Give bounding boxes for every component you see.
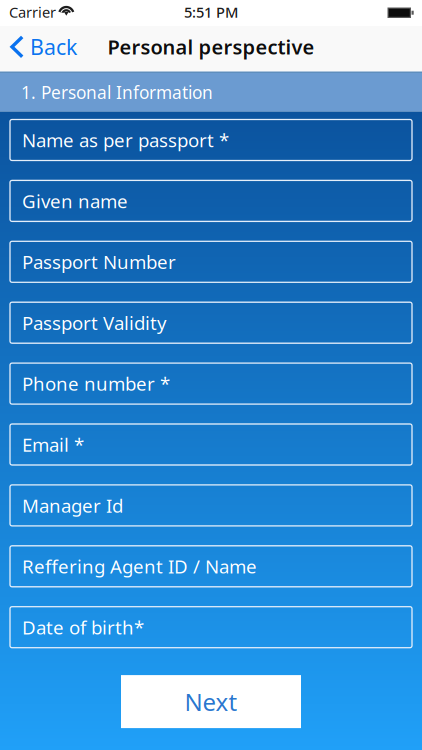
button[interactable]: Phone number * xyxy=(10,363,412,404)
staticText: Email * xyxy=(22,432,84,457)
staticText: Passport Validity xyxy=(22,310,167,335)
staticText: Carrier xyxy=(9,2,56,22)
button[interactable]: Date of birth* xyxy=(10,607,412,648)
staticText: 5:51 PM xyxy=(184,2,238,22)
staticText: Date of birth* xyxy=(22,615,144,640)
staticText: Passport Number xyxy=(22,249,176,274)
button[interactable]: Back xyxy=(0,27,87,71)
staticText: Manager Id xyxy=(22,493,123,518)
button[interactable]: Passport Number xyxy=(10,241,412,282)
staticText: Personal perspective xyxy=(107,33,314,60)
staticText: Name as per passport * xyxy=(22,128,229,152)
button[interactable]: Next xyxy=(121,675,301,728)
button[interactable]: Email * xyxy=(10,424,412,465)
button[interactable]: Manager Id xyxy=(10,485,412,526)
staticText: 1. Personal Information xyxy=(21,81,213,104)
staticText: Back xyxy=(30,33,77,61)
button[interactable]: Passport Validity xyxy=(10,302,412,343)
staticText: Next xyxy=(184,686,237,718)
staticText: Given name xyxy=(22,188,128,213)
staticText: Reffering Agent ID / Name xyxy=(22,554,257,579)
button[interactable]: Name as per passport * xyxy=(10,119,412,160)
staticText: Phone number * xyxy=(22,371,170,396)
button[interactable]: Reffering Agent ID / Name xyxy=(10,546,412,587)
button[interactable]: Given name xyxy=(10,180,412,221)
